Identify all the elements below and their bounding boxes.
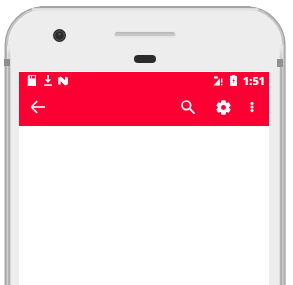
button[interactable]: More options bbox=[239, 94, 265, 120]
button[interactable]: Back bbox=[25, 94, 51, 120]
button[interactable]: Search bbox=[175, 94, 201, 120]
button[interactable]: Settings bbox=[210, 94, 236, 120]
staticText: 1:51 bbox=[243, 73, 265, 88]
